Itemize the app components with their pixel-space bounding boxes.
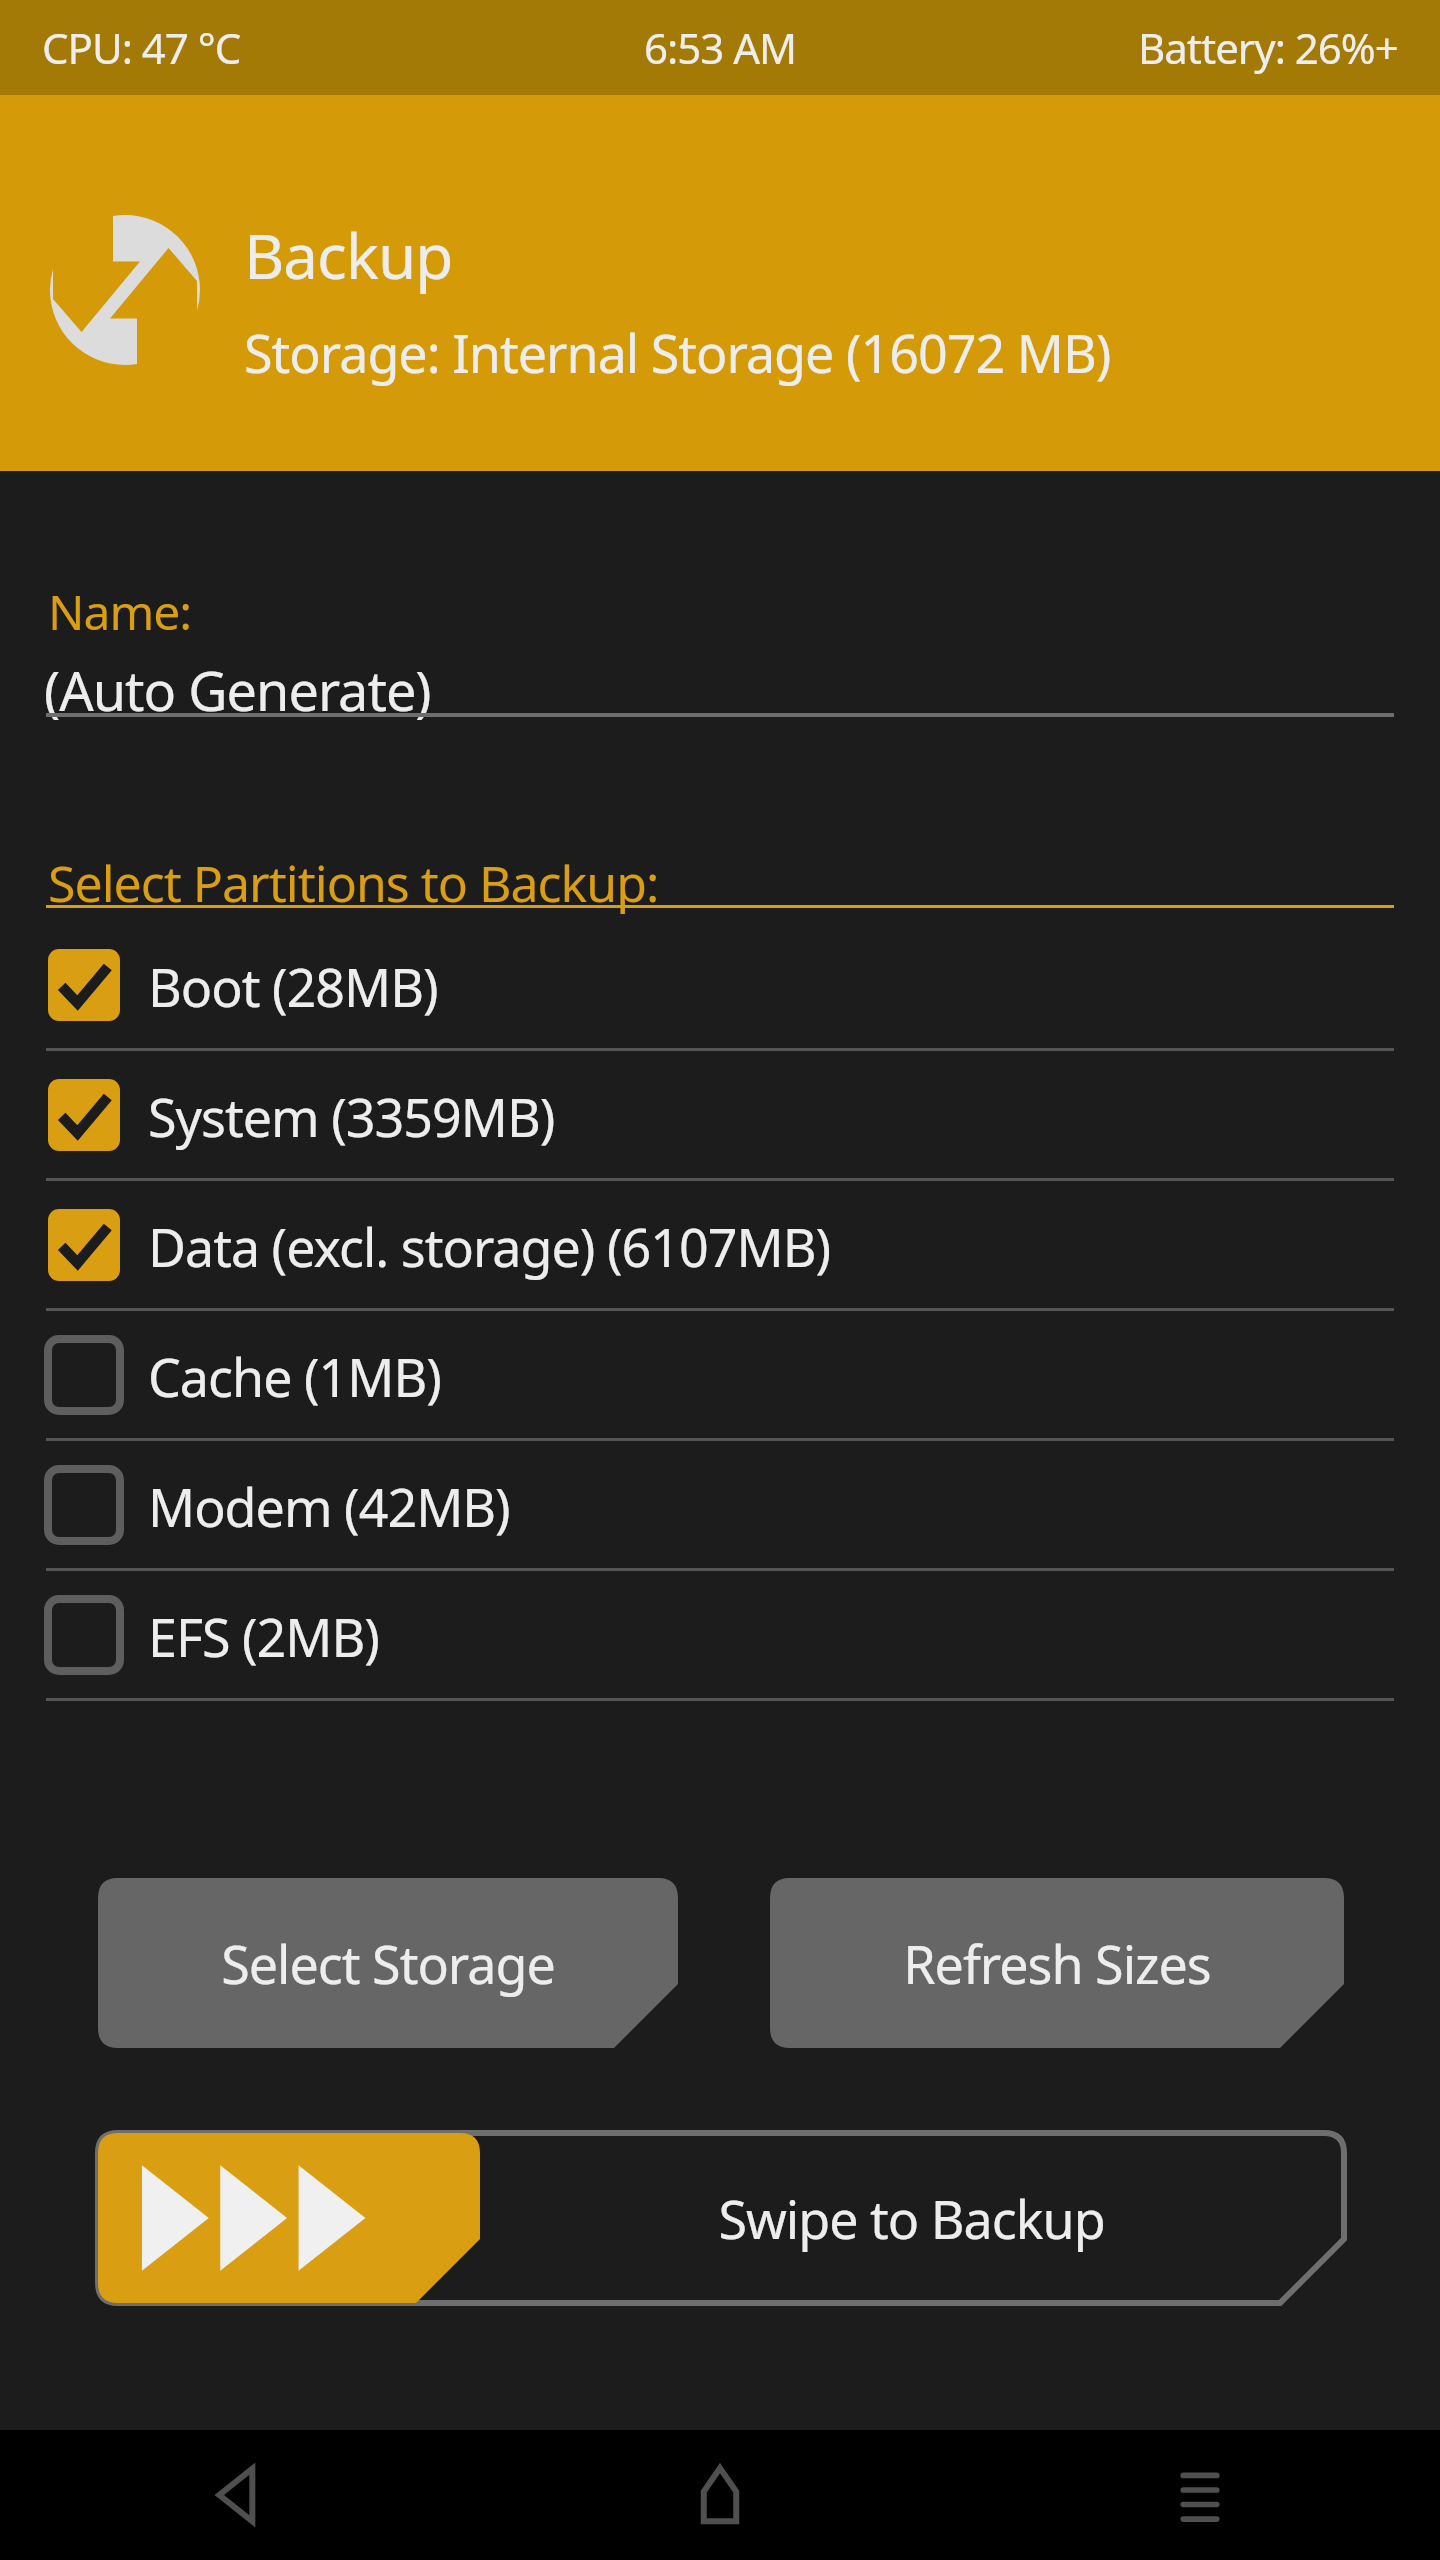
staticText: EFS (2MB) — [148, 1601, 379, 1672]
button[interactable]: EFS (2MB) — [0, 1571, 1440, 1701]
staticText: CPU: 47 °C — [42, 19, 241, 76]
staticText: Swipe to Backup — [718, 2183, 1105, 2254]
staticText: Battery: 26%+ — [1138, 19, 1398, 76]
button[interactable]: Refresh Sizes — [770, 1878, 1344, 2048]
staticText: Modem (42MB) — [148, 1471, 510, 1542]
staticText: System (3359MB) — [148, 1081, 555, 1152]
button[interactable]: Cache (1MB) — [0, 1311, 1440, 1441]
button[interactable]: Home — [480, 2430, 960, 2560]
button[interactable]: Menu — [960, 2430, 1440, 2560]
staticText: (Auto Generate) — [44, 653, 431, 727]
button[interactable]: Boot (28MB) — [0, 921, 1440, 1051]
staticText: BACKUP — [158, 470, 322, 530]
other: TWRP logo — [50, 215, 200, 365]
button[interactable]: System (3359MB) — [0, 1051, 1440, 1181]
staticText: Select Partitions to Backup: — [48, 849, 659, 917]
staticText: Cache (1MB) — [148, 1341, 441, 1412]
staticText: Refresh Sizes — [903, 1928, 1211, 1999]
staticText: Backup — [244, 213, 453, 297]
staticText: ENCRYPTION — [1069, 470, 1331, 530]
staticText: Storage: Internal Storage (16072 MB) — [244, 317, 1111, 388]
button[interactable]: OPTIONS — [480, 441, 960, 559]
button[interactable]: ENCRYPTION — [960, 441, 1440, 559]
staticText: OPTIONS — [627, 470, 813, 530]
staticText: Select Storage — [221, 1928, 555, 1999]
button[interactable]: Select Storage — [98, 1878, 678, 2048]
button[interactable]: BACKUP — [0, 441, 480, 559]
button[interactable]: Swipe to Backup — [98, 2133, 1344, 2303]
staticText: 6:53 AM — [644, 19, 797, 76]
staticText: Name: — [48, 579, 192, 644]
staticText: Boot (28MB) — [148, 951, 438, 1022]
button[interactable]: Back — [0, 2430, 480, 2560]
staticText: Data (excl. storage) (6107MB) — [148, 1211, 831, 1282]
button[interactable]: Data (excl. storage) (6107MB) — [0, 1181, 1440, 1311]
button[interactable]: Modem (42MB) — [0, 1441, 1440, 1571]
